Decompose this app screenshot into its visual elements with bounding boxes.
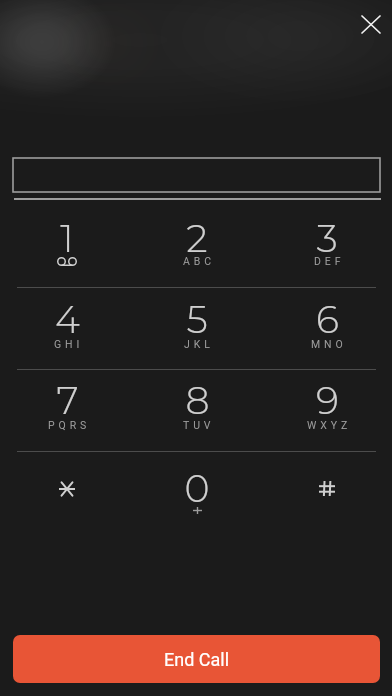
staticText: 3 [316,215,338,261]
staticText: 7 [56,377,79,423]
staticText: TUV [183,419,215,431]
staticText: 4 [55,296,80,342]
staticText: ABC [183,255,215,267]
staticText: 9 [316,377,339,423]
button[interactable]: 8 [132,370,262,451]
button[interactable] [2,452,132,533]
staticText: JKL [184,338,214,350]
button[interactable]: 5 [132,288,262,369]
button[interactable]: 9 [262,370,392,451]
staticText: 0 [184,465,210,511]
staticText: GHI [54,338,84,350]
button[interactable]: 1 [2,205,132,287]
staticText: 1 [60,215,74,261]
staticText: WXYZ [307,419,352,431]
staticText: 2 [186,215,208,261]
staticText: 8 [185,377,210,423]
button[interactable]: Close [352,6,389,43]
button[interactable]: 0 [132,452,262,533]
staticText: DEF [314,255,345,267]
staticText: 5 [186,296,208,342]
staticText: 6 [316,296,339,342]
button[interactable]: 3 [262,205,392,287]
button[interactable]: 7 [2,370,132,451]
button[interactable] [262,452,392,533]
button[interactable] [13,158,380,192]
button[interactable]: 4 [2,288,132,369]
staticText: PQRS [48,419,91,431]
button[interactable]: 6 [262,288,392,369]
button[interactable]: End Call [13,635,380,683]
staticText: End Call [164,649,230,670]
staticText: MNO [311,338,347,350]
button[interactable]: 2 [132,205,262,287]
